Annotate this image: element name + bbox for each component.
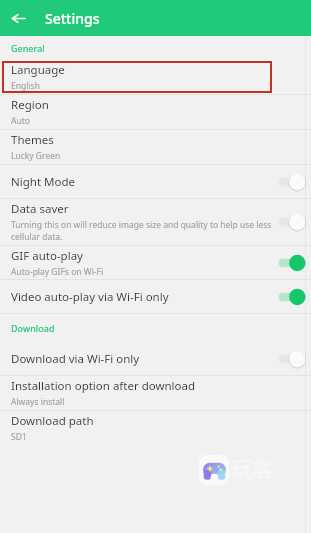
button[interactable]: GIF auto-play [0,246,311,279]
staticText: Always install [11,396,65,408]
button[interactable]: Video auto-play via Wi-Fi only [274,284,306,310]
staticText: Lucky Green [11,150,61,162]
staticText: GIF auto-play [11,248,83,264]
staticText: Download path [11,413,94,429]
staticText: English [11,80,40,92]
staticText: Installation option after download [11,378,196,394]
staticText: Auto [11,115,30,127]
button[interactable]: Region [0,95,311,129]
staticText: SD1 [11,431,27,443]
button[interactable]: Night Mode [274,169,306,195]
staticText: Data saver [11,201,69,217]
staticText: Download [11,322,55,334]
staticText: Download via Wi-Fi only [11,351,140,367]
staticText: General [11,42,45,54]
button[interactable]: Data saver [274,209,306,235]
button[interactable]: Video auto-play via Wi-Fi only [0,280,311,313]
staticText: Themes [11,132,54,148]
staticText: Settings [45,9,100,28]
staticText: Auto-play GIFs on Wi-Fi [11,266,104,278]
button[interactable]: Download path [0,411,311,445]
button[interactable]: Download via Wi-Fi only [274,346,306,372]
button[interactable]: Back [0,0,36,36]
button[interactable]: Language [0,60,311,94]
button[interactable]: Themes [0,130,311,164]
staticText: Turning this on will reduce image size a… [11,219,274,243]
button[interactable]: GIF auto-play [274,250,306,276]
staticText: Region [11,97,49,113]
button[interactable]: Download via Wi-Fi only [0,342,311,375]
button[interactable]: Data saver [0,199,311,245]
staticText: Night Mode [11,174,75,190]
staticText: Video auto-play via Wi-Fi only [11,289,169,305]
button[interactable]: Night Mode [0,165,311,198]
staticText: Language [11,62,65,78]
button[interactable]: Installation option after download [0,376,311,410]
